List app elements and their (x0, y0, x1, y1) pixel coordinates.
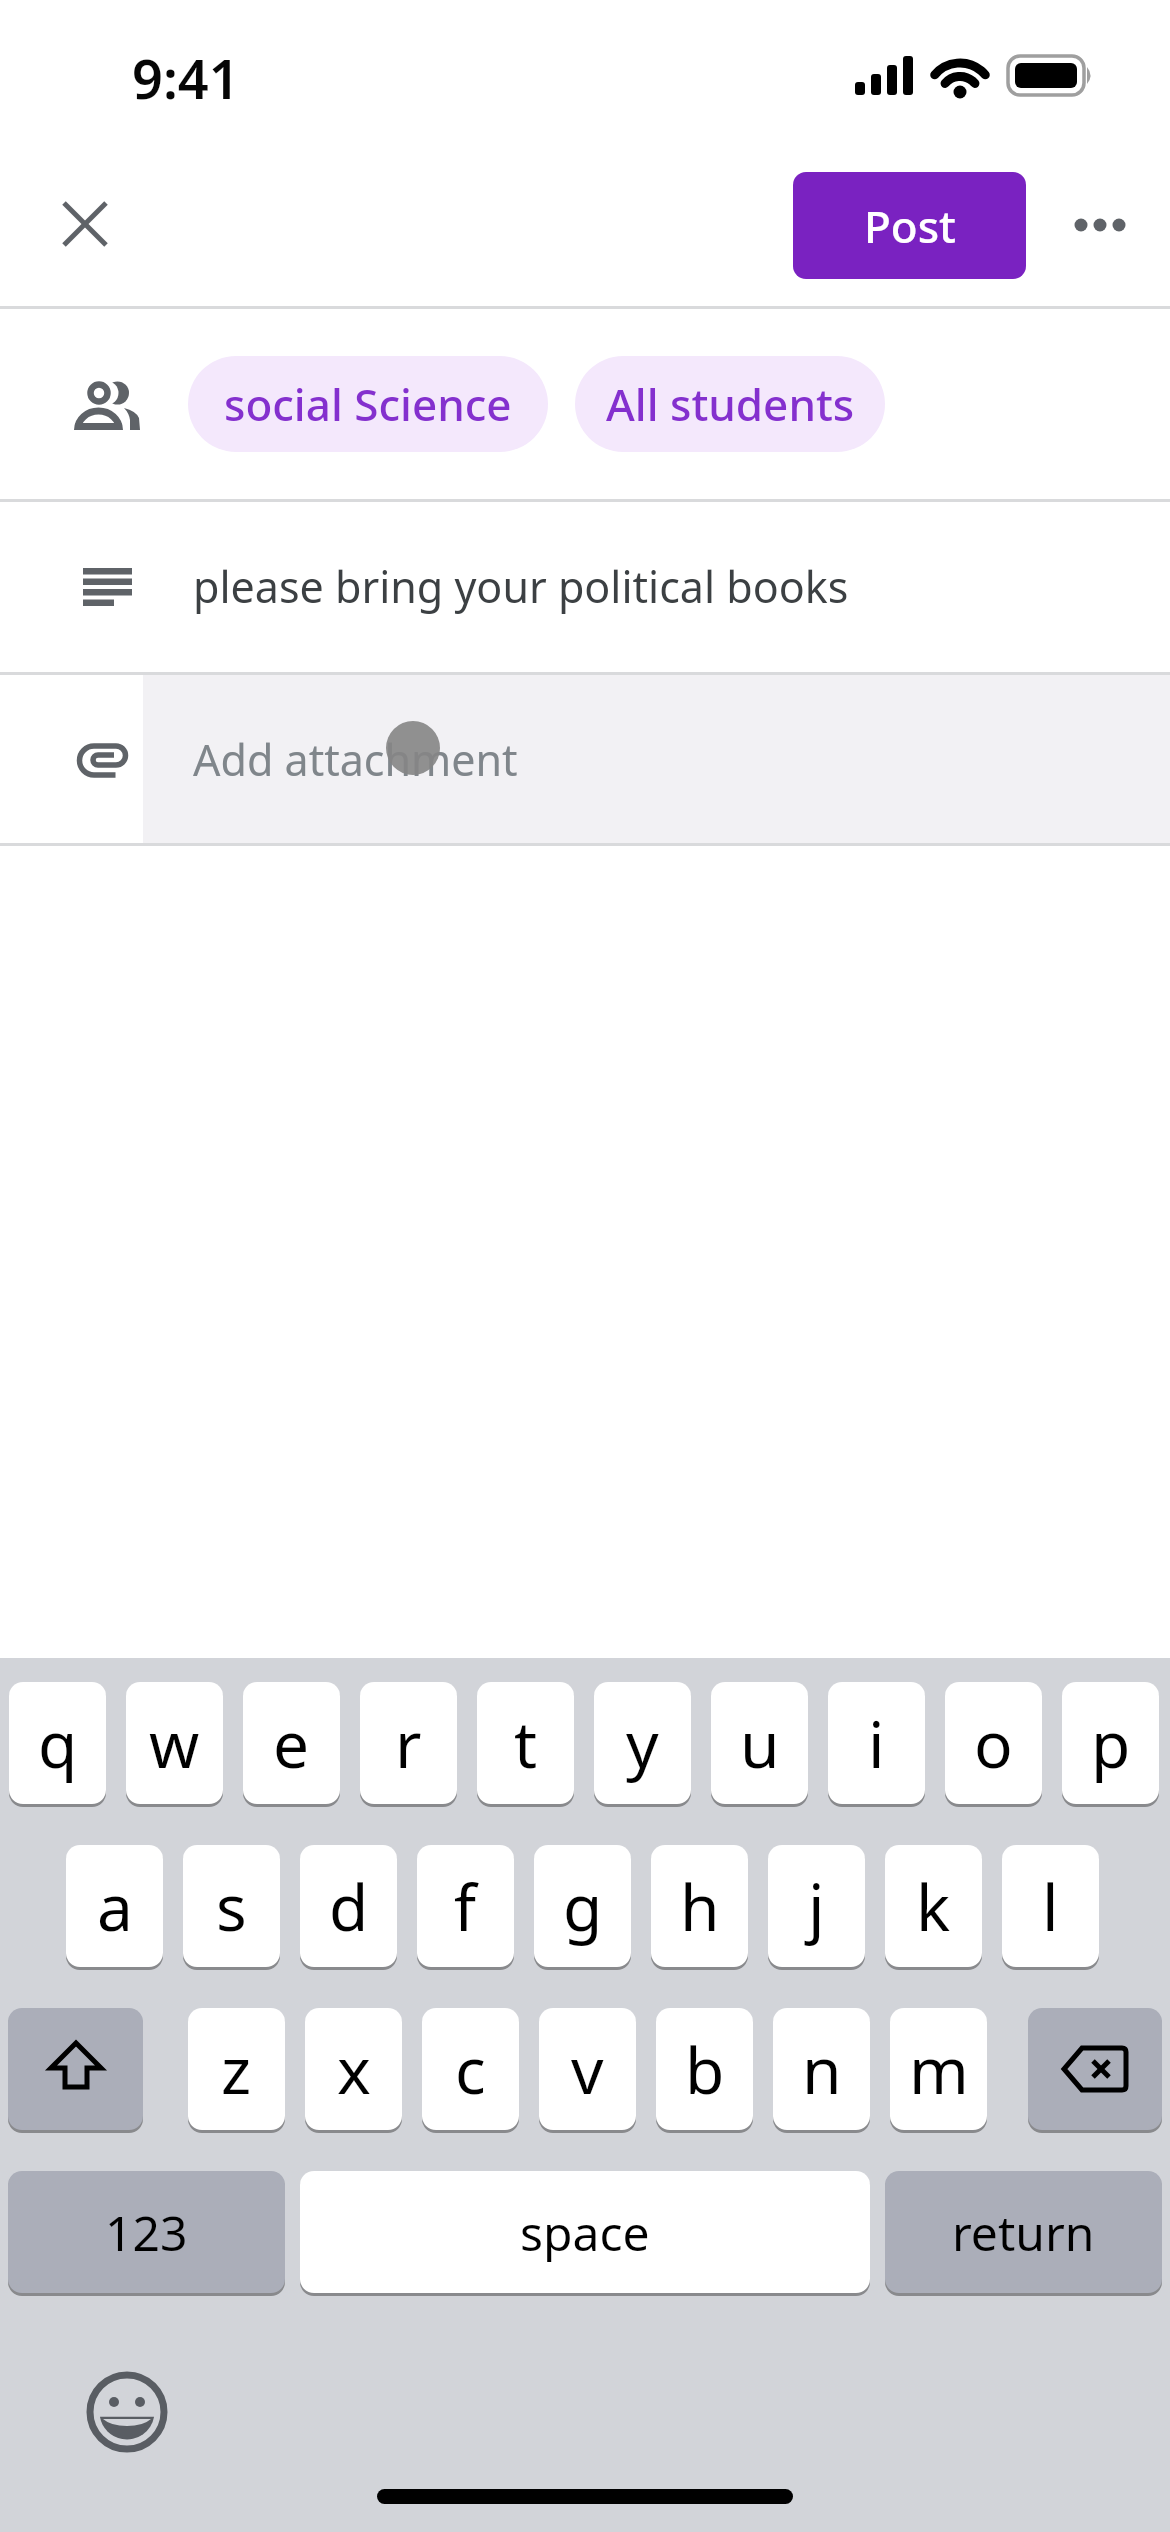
button[interactable] (8, 2008, 143, 2130)
staticText: o (974, 1700, 1013, 1787)
button[interactable]: h (651, 1845, 748, 1967)
button[interactable]: Post (793, 172, 1026, 279)
staticText: p (1091, 1700, 1131, 1787)
staticText: b (685, 2026, 725, 2113)
staticText: x (337, 2026, 371, 2113)
staticText: t (514, 1700, 538, 1787)
staticText: l (1042, 1863, 1059, 1950)
button[interactable]: 123 (8, 2171, 285, 2293)
button[interactable]: Add attachment (193, 675, 1133, 843)
button[interactable]: social Science (188, 356, 548, 452)
button[interactable]: w (126, 1682, 223, 1804)
staticText: n (802, 2026, 842, 2113)
staticText: i (868, 1700, 885, 1787)
staticText: f (454, 1863, 477, 1950)
staticText: please bring your political books (193, 557, 849, 616)
button[interactable]: y (594, 1682, 691, 1804)
button[interactable]: q (9, 1682, 106, 1804)
staticText: All students (606, 374, 855, 434)
button[interactable]: d (300, 1845, 397, 1967)
staticText: v (571, 2026, 604, 2113)
button[interactable]: e (243, 1682, 340, 1804)
button[interactable]: v (539, 2008, 636, 2130)
button[interactable]: return (885, 2171, 1162, 2293)
button[interactable]: n (773, 2008, 870, 2130)
staticText: Post (864, 196, 956, 256)
button[interactable]: l (1002, 1845, 1099, 1967)
button[interactable]: p (1062, 1682, 1159, 1804)
button[interactable]: u (711, 1682, 808, 1804)
button[interactable]: x (305, 2008, 402, 2130)
staticText: Add attachment (193, 730, 518, 789)
button[interactable]: i (828, 1682, 925, 1804)
button[interactable] (55, 194, 115, 254)
staticText: a (97, 1863, 133, 1950)
staticText: 9:41 (132, 41, 240, 115)
button[interactable]: b (656, 2008, 753, 2130)
staticText: social Science (224, 374, 512, 434)
button[interactable]: z (188, 2008, 285, 2130)
staticText: s (216, 1863, 247, 1950)
staticText: c (455, 2026, 486, 2113)
button[interactable]: j (768, 1845, 865, 1967)
staticText: space (520, 2200, 650, 2265)
button[interactable]: c (422, 2008, 519, 2130)
staticText: e (273, 1700, 310, 1787)
button[interactable]: o (945, 1682, 1042, 1804)
button[interactable]: All students (575, 356, 885, 452)
staticText: w (149, 1700, 200, 1787)
staticText: r (395, 1700, 422, 1787)
staticText: z (221, 2026, 252, 2113)
button[interactable]: k (885, 1845, 982, 1967)
staticText: h (680, 1863, 720, 1950)
staticText: m (909, 2026, 969, 2113)
button[interactable]: m (890, 2008, 987, 2130)
button[interactable] (1028, 2008, 1162, 2130)
button[interactable]: f (417, 1845, 514, 1967)
staticText: y (626, 1700, 659, 1787)
staticText: q (38, 1700, 78, 1787)
staticText: j (808, 1863, 825, 1950)
button[interactable]: space (300, 2171, 870, 2293)
staticText: 123 (105, 2200, 188, 2265)
button[interactable] (83, 2371, 171, 2459)
staticText: g (563, 1863, 603, 1950)
staticText: k (916, 1863, 951, 1950)
button[interactable]: s (183, 1845, 280, 1967)
staticText: return (952, 2200, 1095, 2265)
button[interactable] (1055, 200, 1145, 250)
staticText: d (329, 1863, 369, 1950)
button[interactable]: r (360, 1682, 457, 1804)
staticText: u (740, 1700, 780, 1787)
button[interactable]: please bring your political books (193, 500, 1133, 673)
button[interactable]: g (534, 1845, 631, 1967)
button[interactable]: a (66, 1845, 163, 1967)
button[interactable]: t (477, 1682, 574, 1804)
